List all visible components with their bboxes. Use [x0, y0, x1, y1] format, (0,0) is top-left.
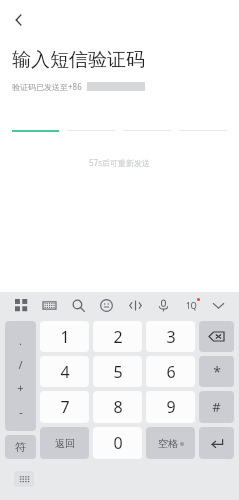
button[interactable]: 返回 [40, 427, 89, 459]
staticText: - [19, 404, 23, 419]
staticText: 5 [113, 361, 123, 383]
button[interactable]: Apps [10, 294, 32, 316]
button[interactable]: Back [4, 5, 34, 35]
staticText: 4 [60, 361, 70, 383]
button[interactable]: Smart assistant [181, 295, 201, 315]
button[interactable]: Voice input [152, 294, 174, 316]
button[interactable]: Switch keyboard [14, 471, 34, 487]
staticText: 3 [166, 326, 176, 348]
button[interactable]: Backspace [199, 321, 234, 352]
button[interactable]: 符 [5, 435, 36, 459]
staticText: 返回 [55, 437, 75, 450]
button[interactable]: Translate [124, 294, 146, 316]
staticText: / [18, 357, 23, 372]
staticText: 1Q [186, 300, 197, 311]
button[interactable]: 57s后可重新发送 [85, 153, 154, 172]
button[interactable]: 4 [40, 356, 89, 387]
staticText: + [17, 380, 24, 395]
button[interactable]: Emoji [95, 294, 117, 316]
button[interactable]: Hide keyboard [207, 294, 229, 316]
staticText: * [213, 362, 221, 381]
button[interactable]: Search [67, 294, 89, 316]
button[interactable]: Enter [199, 427, 234, 459]
button[interactable]: # [199, 391, 234, 423]
staticText: 符 [15, 440, 26, 454]
staticText: 空格 [158, 437, 178, 450]
button[interactable]: 2 [93, 321, 142, 352]
staticText: 7 [60, 396, 70, 418]
staticText: 9 [166, 396, 176, 418]
staticText: 8 [113, 396, 123, 418]
staticText: # [212, 398, 221, 416]
button[interactable]: 6 [146, 356, 195, 387]
button[interactable]: * [199, 356, 234, 387]
button[interactable]: Keyboard [38, 294, 60, 316]
button[interactable]: 0 [93, 427, 142, 459]
button[interactable]: 3 [146, 321, 195, 352]
staticText: 1 [60, 326, 70, 348]
staticText: 验证码已发送至+86 [12, 81, 82, 92]
staticText: 0 [113, 432, 123, 454]
button[interactable]: 9 [146, 391, 195, 423]
staticText: 输入短信验证码 [12, 48, 145, 72]
staticText: 57s后可重新发送 [89, 157, 150, 168]
button[interactable]: 1 [40, 321, 89, 352]
staticText: . [19, 333, 22, 348]
staticText: 2 [113, 326, 123, 348]
button[interactable]: 5 [93, 356, 142, 387]
button[interactable]: Symbols dot slash plus minus [5, 321, 36, 431]
button[interactable]: 空格 [146, 427, 195, 459]
staticText: 6 [166, 361, 176, 383]
button[interactable]: 8 [93, 391, 142, 423]
button[interactable]: 7 [40, 391, 89, 423]
